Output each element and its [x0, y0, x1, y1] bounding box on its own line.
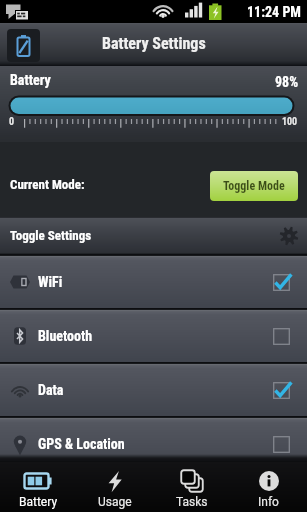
button[interactable]: App icon [7, 29, 40, 62]
staticText: Toggle Settings [10, 228, 92, 243]
staticText: Tasks [176, 495, 208, 509]
button[interactable]: Tasks [153, 462, 230, 512]
staticText: 100 [282, 116, 298, 128]
staticText: Toggle Mode [223, 179, 285, 193]
staticText: Info [258, 495, 279, 509]
staticText: Battery [19, 495, 58, 509]
button[interactable]: Settings [279, 226, 299, 246]
staticText: GPS & Location [38, 436, 125, 452]
button[interactable]: Toggle Mode [210, 171, 298, 201]
staticText: Bluetooth [38, 328, 93, 344]
staticText: 0 [9, 116, 15, 128]
staticText: 98% [275, 74, 299, 90]
staticText: WiFi [38, 274, 63, 290]
button[interactable]: Battery [0, 462, 76, 512]
button[interactable]: GPS & Location [0, 418, 307, 470]
staticText: Data [38, 382, 64, 398]
staticText: Usage [98, 495, 132, 509]
staticText: 11:24 PM [247, 4, 301, 20]
staticText: Current Mode: [10, 177, 85, 192]
button[interactable]: Data [0, 364, 307, 416]
button[interactable]: WiFi [0, 256, 307, 308]
button[interactable]: Usage [76, 462, 153, 512]
staticText: Battery Settings [102, 34, 206, 53]
button[interactable]: Bluetooth [0, 310, 307, 362]
staticText: Battery [10, 72, 51, 88]
button[interactable]: Info [230, 462, 307, 512]
